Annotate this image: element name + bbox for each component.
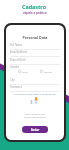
staticText: Enviar [31,128,40,132]
button[interactable]: Enviar [22,126,48,133]
staticText: Seus dados estão sendo processados [6,112,64,118]
staticText: Ao continuar você aceita os termos de us… [7,93,63,96]
button[interactable]: Male [18,70,28,73]
other: Ilustração [30,97,40,106]
staticText: Password [10,85,22,89]
staticText: Male [22,70,28,73]
staticText: Gender [10,65,20,69]
staticText: Female [44,70,53,73]
staticText: Email Address [10,50,28,54]
button[interactable]: Female [40,70,53,73]
staticText: Cadastro [22,3,47,10]
staticText: City [10,78,15,82]
staticText: Date of Birth [10,58,26,62]
staticText: Personal Data [6,35,64,40]
staticText: Full Name [10,43,23,47]
staticText: rápido e prático [23,11,47,15]
